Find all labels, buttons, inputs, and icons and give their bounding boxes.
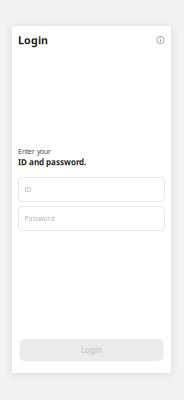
- staticText: ID and password.: [18, 157, 86, 167]
- staticText: Login: [18, 33, 48, 47]
- button[interactable]: Login: [19, 339, 163, 361]
- staticText: ID: [24, 185, 31, 194]
- staticText: Login: [81, 345, 102, 355]
- staticText: Password: [24, 214, 54, 223]
- button[interactable]: Information: [156, 35, 165, 44]
- staticText: Enter your: [18, 147, 51, 156]
